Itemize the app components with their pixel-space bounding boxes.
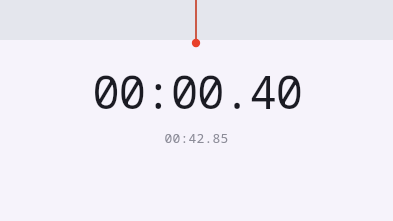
- staticText: 00:00.40: [92, 60, 302, 123]
- button[interactable]: 00:00.40: [0, 60, 393, 147]
- other: Timeline marker: [0, 0, 393, 221]
- staticText: 00:42.85: [164, 129, 229, 147]
